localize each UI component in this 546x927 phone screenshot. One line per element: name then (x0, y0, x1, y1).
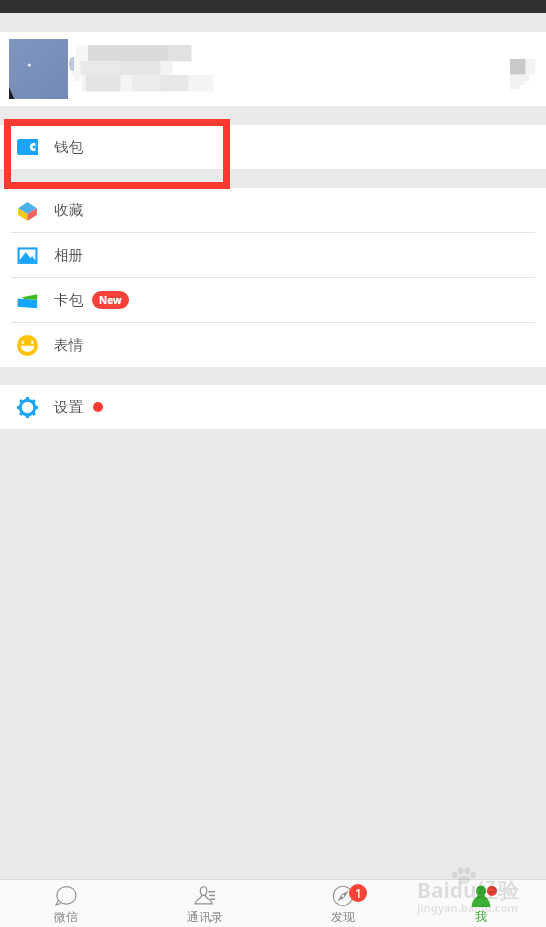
staticText: jingyan.baidu.com (417, 900, 519, 915)
button[interactable]: My QR code (0, 32, 546, 106)
button[interactable]: 设置 (0, 385, 546, 429)
staticText: 收藏 (54, 201, 83, 219)
staticText: 表情 (54, 336, 83, 354)
staticText: 1 (355, 885, 362, 901)
button[interactable]: 微信 (0, 880, 135, 927)
button[interactable]: 通讯录 (136, 880, 274, 927)
staticText: Baidu经验 (417, 876, 519, 905)
staticText: 微信 (54, 909, 78, 924)
button[interactable]: 相册 (0, 233, 546, 277)
staticText: 钱包 (54, 138, 83, 156)
button[interactable]: 钱包 (0, 125, 546, 169)
staticText: 相册 (54, 246, 83, 264)
other: My QR code (510, 59, 536, 91)
staticText: 发现 (331, 909, 355, 924)
staticText: 通讯录 (187, 909, 223, 924)
staticText: 卡包 (54, 291, 83, 309)
staticText: 我 (475, 909, 487, 924)
button[interactable]: 卡包 (0, 278, 546, 322)
staticText: New (99, 293, 122, 307)
button[interactable]: 收藏 (0, 188, 546, 232)
staticText: 设置 (54, 398, 83, 416)
button[interactable]: 我 (412, 880, 546, 927)
button[interactable]: 1 (274, 880, 412, 927)
button[interactable]: 表情 (0, 323, 546, 367)
